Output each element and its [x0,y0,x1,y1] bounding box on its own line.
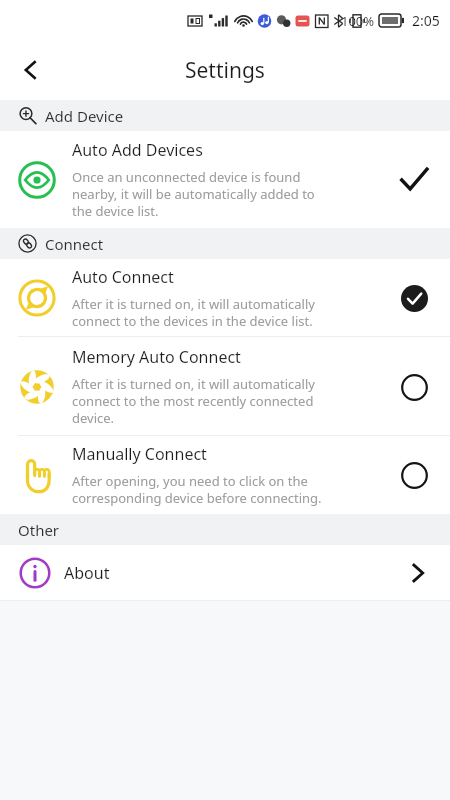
staticText: After opening, you need to click on the … [72,472,322,507]
staticText: Other [18,520,60,540]
staticText: Once an unconnected device is found near… [72,168,315,220]
button[interactable]: Auto Add Devices [0,131,450,228]
staticText: Add Device [45,106,124,126]
staticText: Settings [185,56,265,85]
staticText: 100% [341,12,375,30]
staticText: After it is turned on, it will automatic… [72,295,315,330]
staticText: After it is turned on, it will automatic… [72,375,315,427]
staticText: Auto Connect [72,266,174,288]
staticText: Memory Auto Connect [72,346,241,368]
button[interactable]: Back [6,45,56,95]
staticText: Manually Connect [72,443,207,465]
staticText: Connect [45,234,104,254]
button[interactable]: About [0,545,450,600]
staticText: 2:05 [412,11,440,30]
button[interactable]: Auto Connect [0,259,450,337]
button[interactable]: Manually Connect [0,436,450,514]
staticText: About [64,562,110,584]
staticText: Auto Add Devices [72,139,203,161]
button[interactable]: Memory Auto Connect [0,337,450,436]
